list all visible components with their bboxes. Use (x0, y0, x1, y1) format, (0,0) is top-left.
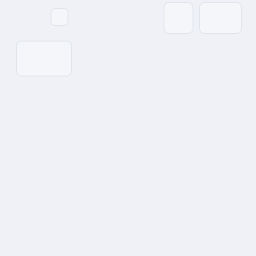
button[interactable]: Card (16, 40, 72, 76)
button[interactable]: More (199, 2, 242, 34)
button[interactable]: Filter (163, 2, 193, 34)
button[interactable]: Badge (50, 8, 68, 26)
